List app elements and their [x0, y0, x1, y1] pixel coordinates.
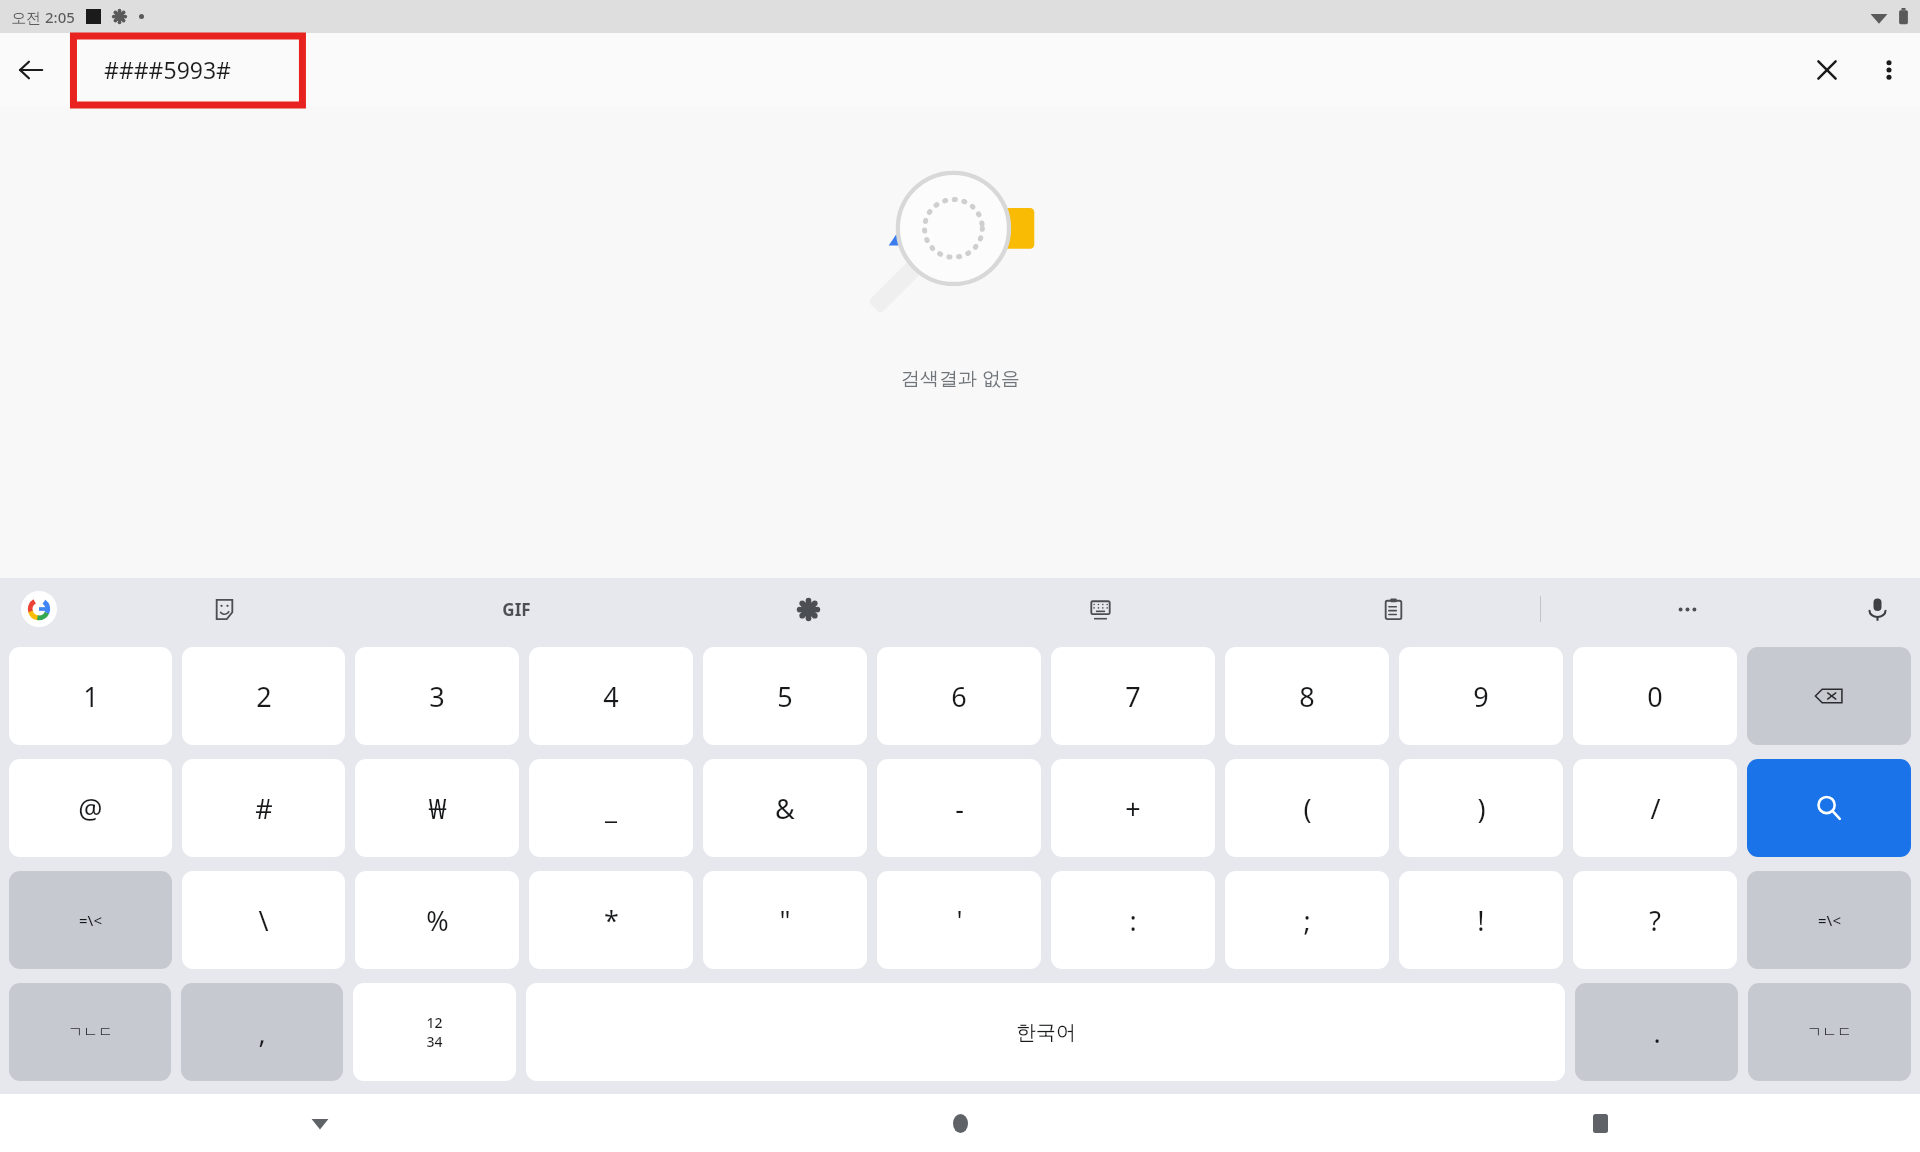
button[interactable]: . — [1575, 983, 1738, 1081]
staticText: , — [258, 1014, 266, 1051]
staticText: ㄱㄴㄷ — [68, 1023, 113, 1042]
button[interactable]: Settings — [662, 578, 954, 640]
button[interactable]: Clipboard — [1247, 578, 1540, 640]
staticText: @ — [78, 790, 103, 827]
button[interactable]: Search — [1747, 759, 1911, 857]
staticText: 한국어 — [1016, 1020, 1076, 1045]
button[interactable]: + — [1051, 759, 1215, 857]
button[interactable]: - — [877, 759, 1041, 857]
staticText: 0 — [1647, 678, 1663, 715]
staticText: ( — [1303, 790, 1312, 827]
button[interactable]: 3 — [355, 647, 519, 745]
staticText: =\< — [1818, 910, 1841, 930]
button[interactable]: & — [703, 759, 867, 857]
button[interactable]: # — [182, 759, 345, 857]
button[interactable]: 한국어 — [526, 983, 1565, 1081]
button[interactable]: Recents — [1280, 1094, 1920, 1152]
button[interactable]: 5 — [703, 647, 867, 745]
button[interactable]: / — [1573, 759, 1737, 857]
button[interactable]: Home — [640, 1094, 1280, 1152]
button[interactable]: =\< — [1747, 871, 1911, 969]
staticText: : — [1129, 902, 1137, 939]
staticText: ) — [1477, 790, 1486, 827]
button[interactable]: 1 — [9, 647, 172, 745]
staticText: 4 — [603, 678, 619, 715]
button[interactable]: ㄱㄴㄷ — [1748, 983, 1911, 1081]
button[interactable]: 6 — [877, 647, 1041, 745]
button[interactable]: Backspace — [1747, 647, 1911, 745]
staticText: 오전 2:05 — [11, 7, 75, 27]
button[interactable]: Numbers — [353, 983, 516, 1081]
staticText: ? — [1649, 902, 1661, 939]
staticText: ! — [1477, 902, 1485, 939]
button[interactable]: ####5993# — [62, 33, 1796, 106]
button[interactable]: 0 — [1573, 647, 1737, 745]
staticText: % — [426, 902, 449, 939]
button[interactable]: Back — [0, 1094, 640, 1152]
button[interactable]: @ — [9, 759, 172, 857]
button[interactable]: , — [181, 983, 343, 1081]
button[interactable]: Voice input — [1834, 578, 1920, 640]
staticText: / — [1650, 790, 1661, 827]
staticText: 34 — [426, 1032, 443, 1051]
staticText: ₩ — [428, 790, 447, 827]
staticText: & — [775, 790, 795, 827]
button[interactable]: : — [1051, 871, 1215, 969]
staticText: . — [1653, 1014, 1661, 1051]
staticText: GIF — [502, 598, 531, 621]
button[interactable]: Google — [0, 578, 78, 640]
button[interactable]: 8 — [1225, 647, 1389, 745]
button[interactable]: 7 — [1051, 647, 1215, 745]
staticText: 12 — [426, 1013, 443, 1032]
staticText: - — [955, 790, 964, 827]
staticText: 2 — [256, 678, 272, 715]
button[interactable]: % — [355, 871, 519, 969]
staticText: 1 — [83, 678, 99, 715]
button[interactable]: More — [1541, 578, 1834, 640]
staticText: 6 — [951, 678, 967, 715]
staticText: 5 — [777, 678, 793, 715]
button[interactable]: ? — [1573, 871, 1737, 969]
staticText: ㄱㄴㄷ — [1807, 1023, 1852, 1042]
staticText: 검색결과 없음 — [901, 365, 1020, 391]
button[interactable]: * — [529, 871, 693, 969]
staticText: * — [604, 902, 619, 939]
button[interactable]: ( — [1225, 759, 1389, 857]
button[interactable]: Clear — [1796, 33, 1858, 106]
button[interactable]: More options — [1858, 33, 1920, 106]
staticText: _ — [605, 790, 617, 827]
staticText: =\< — [79, 910, 102, 930]
button[interactable]: ; — [1225, 871, 1389, 969]
button[interactable]: ₩ — [355, 759, 519, 857]
button[interactable]: " — [703, 871, 867, 969]
staticText: ' — [956, 902, 963, 939]
button[interactable]: ) — [1399, 759, 1563, 857]
button[interactable]: =\< — [9, 871, 172, 969]
button[interactable]: ! — [1399, 871, 1563, 969]
staticText: ####5993# — [104, 54, 231, 85]
staticText: " — [779, 902, 791, 939]
button[interactable]: Stickers — [78, 578, 370, 640]
button[interactable]: ㄱㄴㄷ — [9, 983, 171, 1081]
button[interactable]: ' — [877, 871, 1041, 969]
staticText: # — [255, 790, 273, 827]
staticText: 3 — [429, 678, 445, 715]
button[interactable]: Back — [0, 33, 62, 106]
button[interactable]: _ — [529, 759, 693, 857]
button[interactable]: \ — [182, 871, 345, 969]
staticText: 7 — [1125, 678, 1141, 715]
staticText: \ — [258, 902, 269, 939]
button[interactable]: Keyboard mode — [954, 578, 1247, 640]
button[interactable]: 2 — [182, 647, 345, 745]
button[interactable]: 4 — [529, 647, 693, 745]
staticText: 8 — [1299, 678, 1315, 715]
button[interactable]: 9 — [1399, 647, 1563, 745]
staticText: 9 — [1473, 678, 1489, 715]
button[interactable]: GIF — [370, 578, 662, 640]
staticText: ; — [1303, 902, 1311, 939]
staticText: + — [1125, 790, 1141, 827]
